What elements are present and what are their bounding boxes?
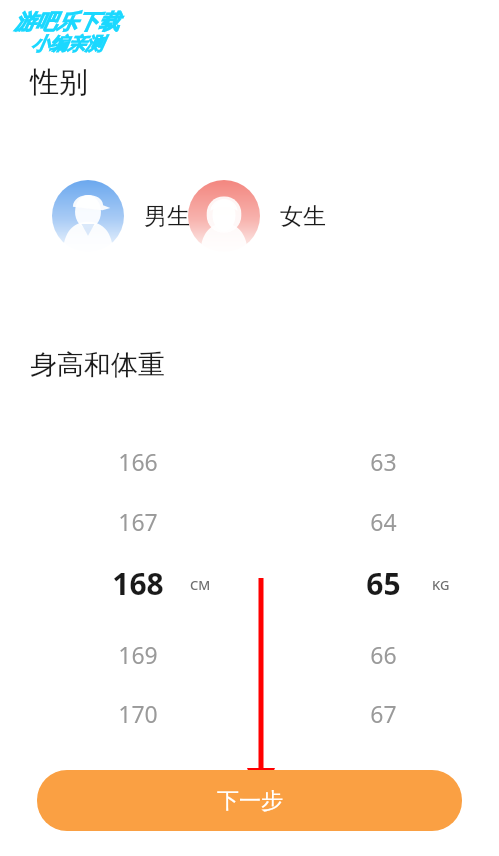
staticText: 170 [118, 698, 158, 729]
button[interactable]: 63 [323, 441, 443, 481]
button[interactable]: 66 [323, 634, 443, 674]
staticText: 166 [118, 446, 158, 477]
button[interactable]: 女生 [188, 180, 326, 252]
staticText: 男生 [144, 202, 190, 231]
button[interactable]: 167 [78, 501, 198, 541]
staticText: 下一步 [217, 787, 283, 815]
staticText: 167 [118, 506, 158, 537]
staticText: 66 [370, 639, 397, 670]
button[interactable]: 男生 [52, 180, 190, 252]
button[interactable]: 170 [78, 693, 198, 733]
staticText: 63 [370, 446, 397, 477]
staticText: 67 [370, 698, 397, 729]
button[interactable]: 166 [78, 441, 198, 481]
staticText: 小编亲测 [31, 33, 103, 56]
button[interactable]: 65 [323, 563, 443, 603]
staticText: 身高和体重 [30, 348, 165, 382]
staticText: 64 [370, 506, 397, 537]
staticText: 女生 [280, 202, 326, 231]
button[interactable]: 下一步 [37, 770, 462, 831]
staticText: 65 [366, 563, 401, 603]
staticText: 性别 [30, 64, 88, 101]
button[interactable]: 64 [323, 501, 443, 541]
button[interactable]: 168 [78, 563, 198, 603]
button[interactable]: 67 [323, 693, 443, 733]
button[interactable]: 169 [78, 634, 198, 674]
staticText: CM [190, 576, 211, 594]
staticText: 游吧乐下载 [14, 9, 119, 35]
staticText: 168 [112, 563, 164, 603]
staticText: 169 [118, 639, 158, 670]
staticText: KG [432, 576, 450, 594]
